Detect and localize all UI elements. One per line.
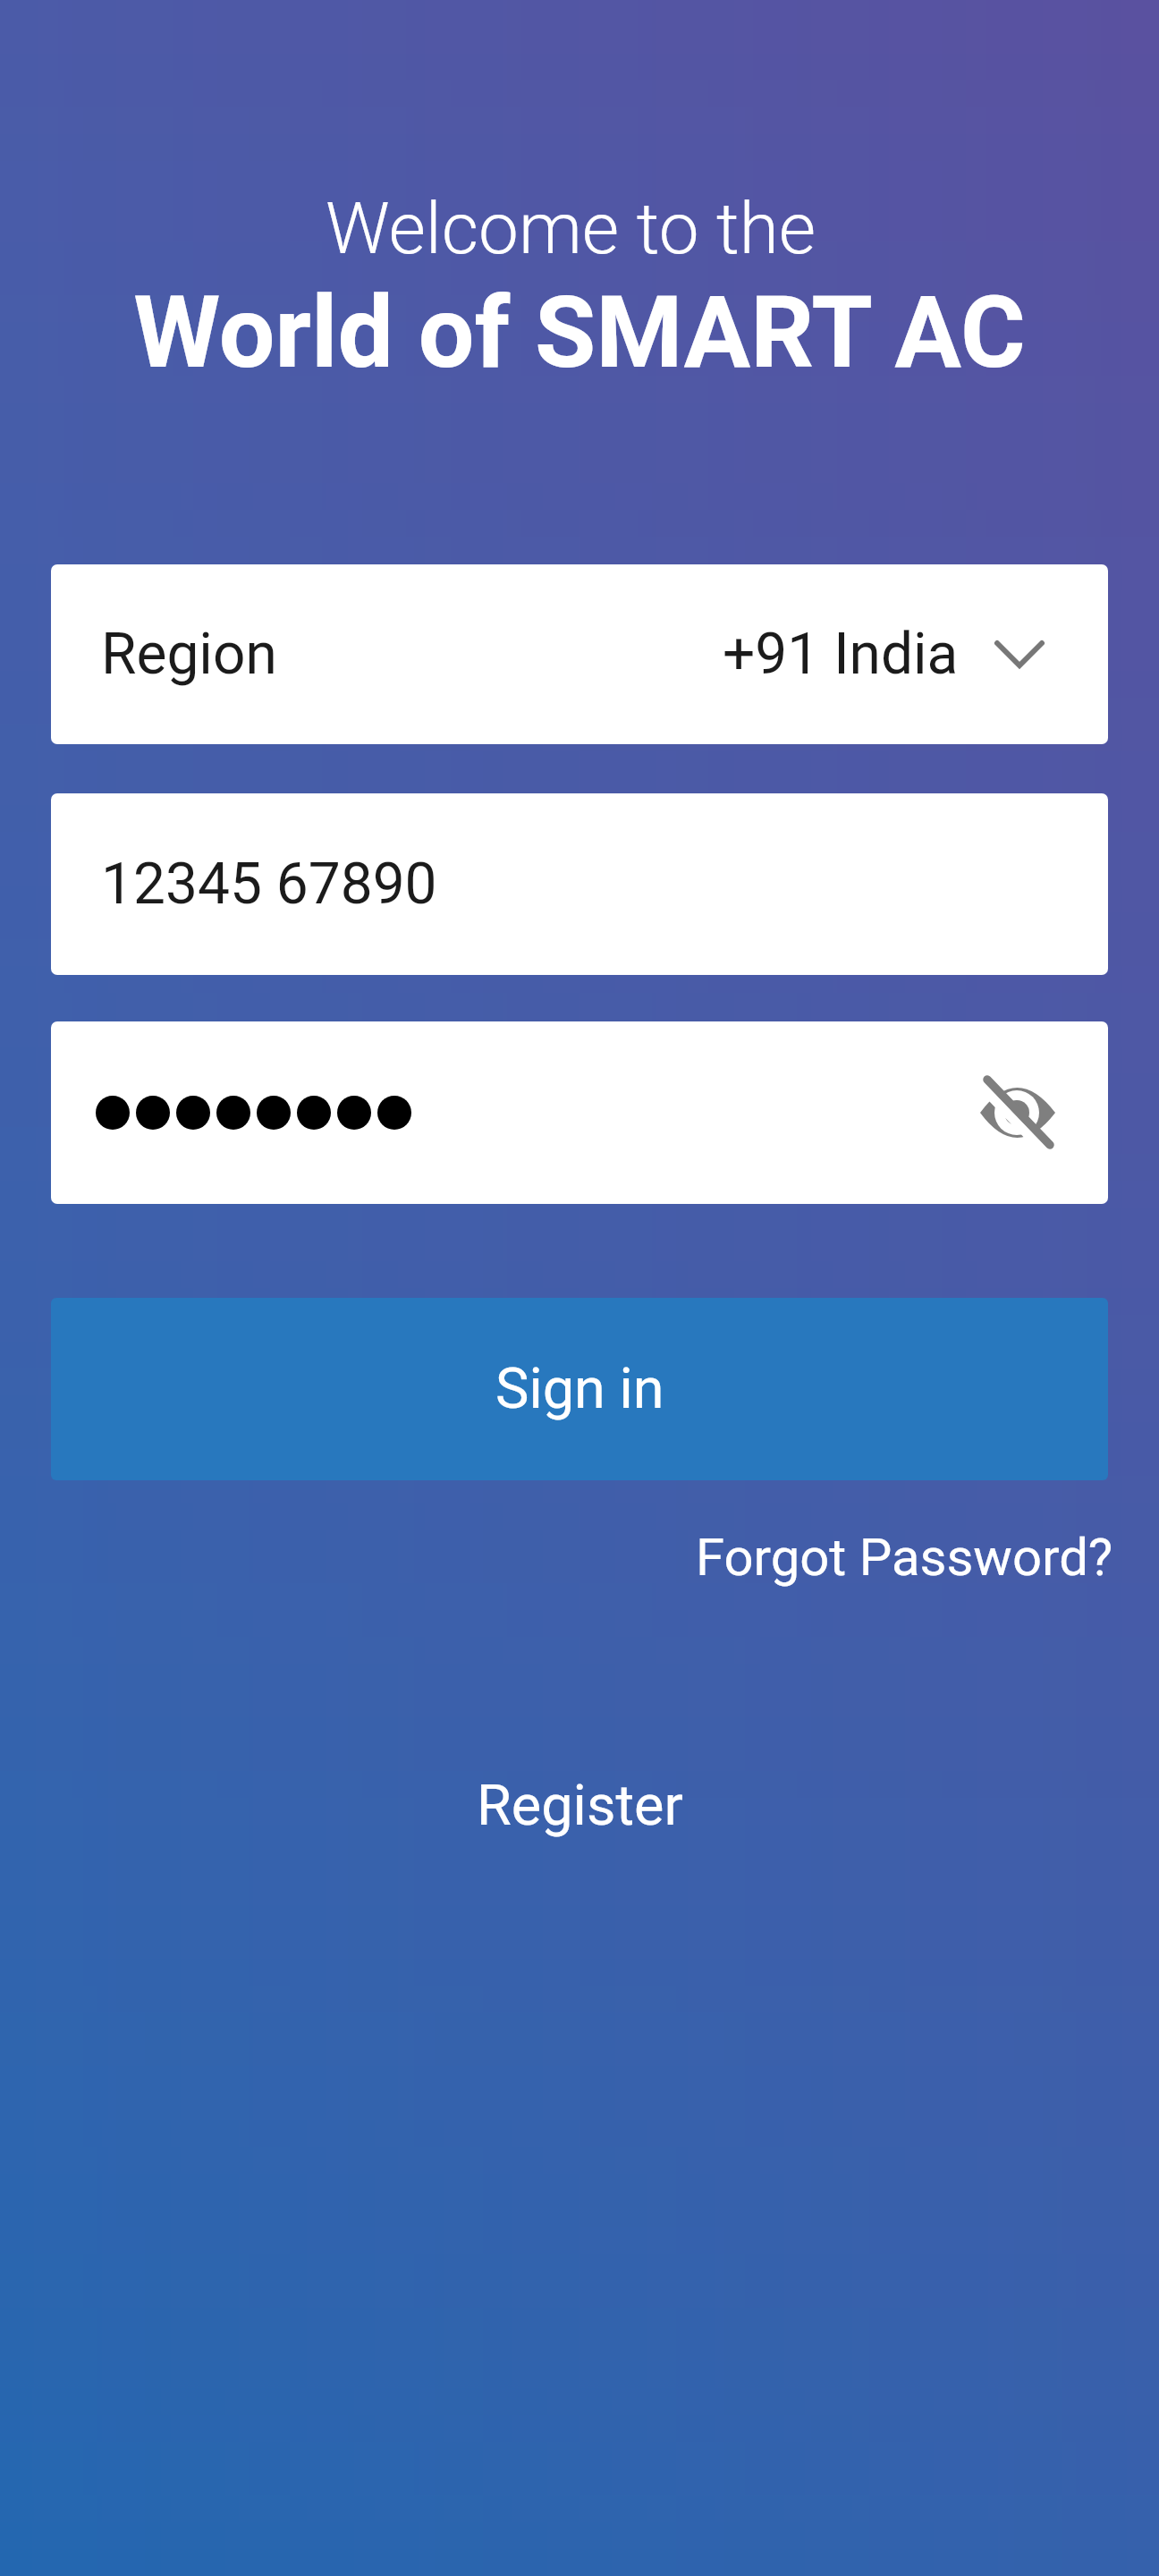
staticText: Welcome to the — [0, 187, 1150, 271]
button[interactable]: 12345 67890 — [51, 793, 1108, 975]
button[interactable]: Register — [477, 1773, 683, 1839]
button[interactable]: Forgot Password? — [696, 1527, 1113, 1588]
button[interactable]: Sign in — [51, 1298, 1108, 1480]
button[interactable] — [978, 1078, 1055, 1148]
staticText: Sign in — [495, 1356, 664, 1422]
staticText: +91 India — [723, 621, 959, 688]
button[interactable] — [51, 1021, 1108, 1204]
staticText: World of SMART AC — [0, 275, 1159, 391]
staticText: Forgot Password? — [696, 1527, 1113, 1588]
button[interactable]: Region — [51, 564, 1108, 744]
staticText: 12345 67890 — [101, 851, 437, 918]
staticText: Register — [477, 1773, 683, 1839]
staticText: Region — [101, 621, 277, 688]
